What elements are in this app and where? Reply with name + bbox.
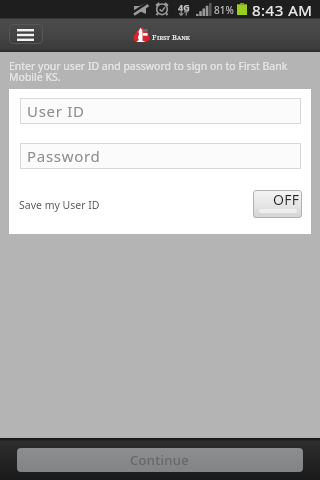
staticText: OFF [273,190,300,209]
staticText: User ID [27,101,85,121]
button[interactable]: Continue [17,448,303,472]
staticText: ANK [177,34,191,42]
staticText: IRST [157,34,170,42]
staticText: Save my User ID [19,198,100,212]
staticText: 81% [214,3,234,17]
button[interactable]: User ID [20,98,301,124]
staticText: Password [27,146,101,166]
staticText: F [152,32,157,42]
staticText: B [172,32,177,42]
staticText: 4G [178,1,190,13]
staticText: Continue [130,451,190,469]
button[interactable]: OFF [253,190,302,218]
button[interactable]: Open navigation menu [9,24,43,44]
staticText: Enter your user ID and password to sign … [9,59,301,85]
button[interactable]: Password [20,143,301,169]
staticText: 8:43 AM [252,0,313,18]
